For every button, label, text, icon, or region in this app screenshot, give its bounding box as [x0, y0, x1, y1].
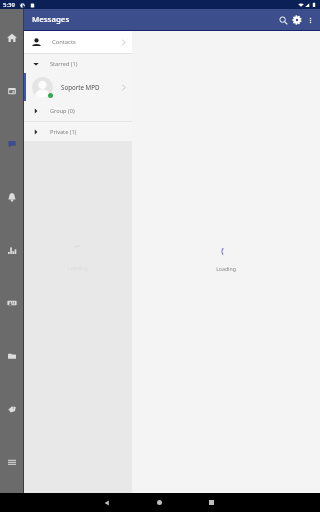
button[interactable]: Contacts — [0, 276, 24, 329]
button[interactable]: Search — [276, 13, 290, 27]
button[interactable]: More options — [304, 14, 317, 27]
staticText: Group (0) — [50, 107, 75, 115]
button[interactable]: Starred (1) — [24, 54, 132, 73]
button[interactable]: Contacts — [24, 31, 132, 53]
button[interactable]: Notifications — [0, 170, 24, 223]
button[interactable]: Messages — [0, 117, 24, 170]
staticText: Loading — [68, 264, 88, 271]
button[interactable]: Soporte MPD — [24, 73, 132, 101]
button[interactable]: Reports — [0, 223, 24, 276]
button[interactable]: Menu — [0, 435, 24, 488]
button[interactable]: Settings — [290, 13, 304, 27]
staticText: 5:39 — [3, 1, 15, 9]
button[interactable]: Tags — [0, 382, 24, 435]
button[interactable]: Calendar — [0, 64, 24, 117]
button[interactable]: Back — [97, 493, 116, 512]
staticText: Contacts — [52, 38, 76, 46]
button[interactable]: Private (1) — [24, 122, 132, 141]
button[interactable]: Files — [0, 329, 24, 382]
button[interactable]: Group (0) — [24, 101, 132, 121]
button[interactable]: Recents — [202, 493, 221, 512]
staticText: Loading — [216, 265, 236, 272]
button[interactable]: Home — [0, 11, 24, 64]
staticText: Messages — [32, 14, 70, 25]
button[interactable]: Home — [150, 493, 169, 512]
staticText: Starred (1) — [50, 60, 78, 68]
staticText: Private (1) — [50, 128, 77, 136]
staticText: Soporte MPD — [61, 83, 100, 91]
